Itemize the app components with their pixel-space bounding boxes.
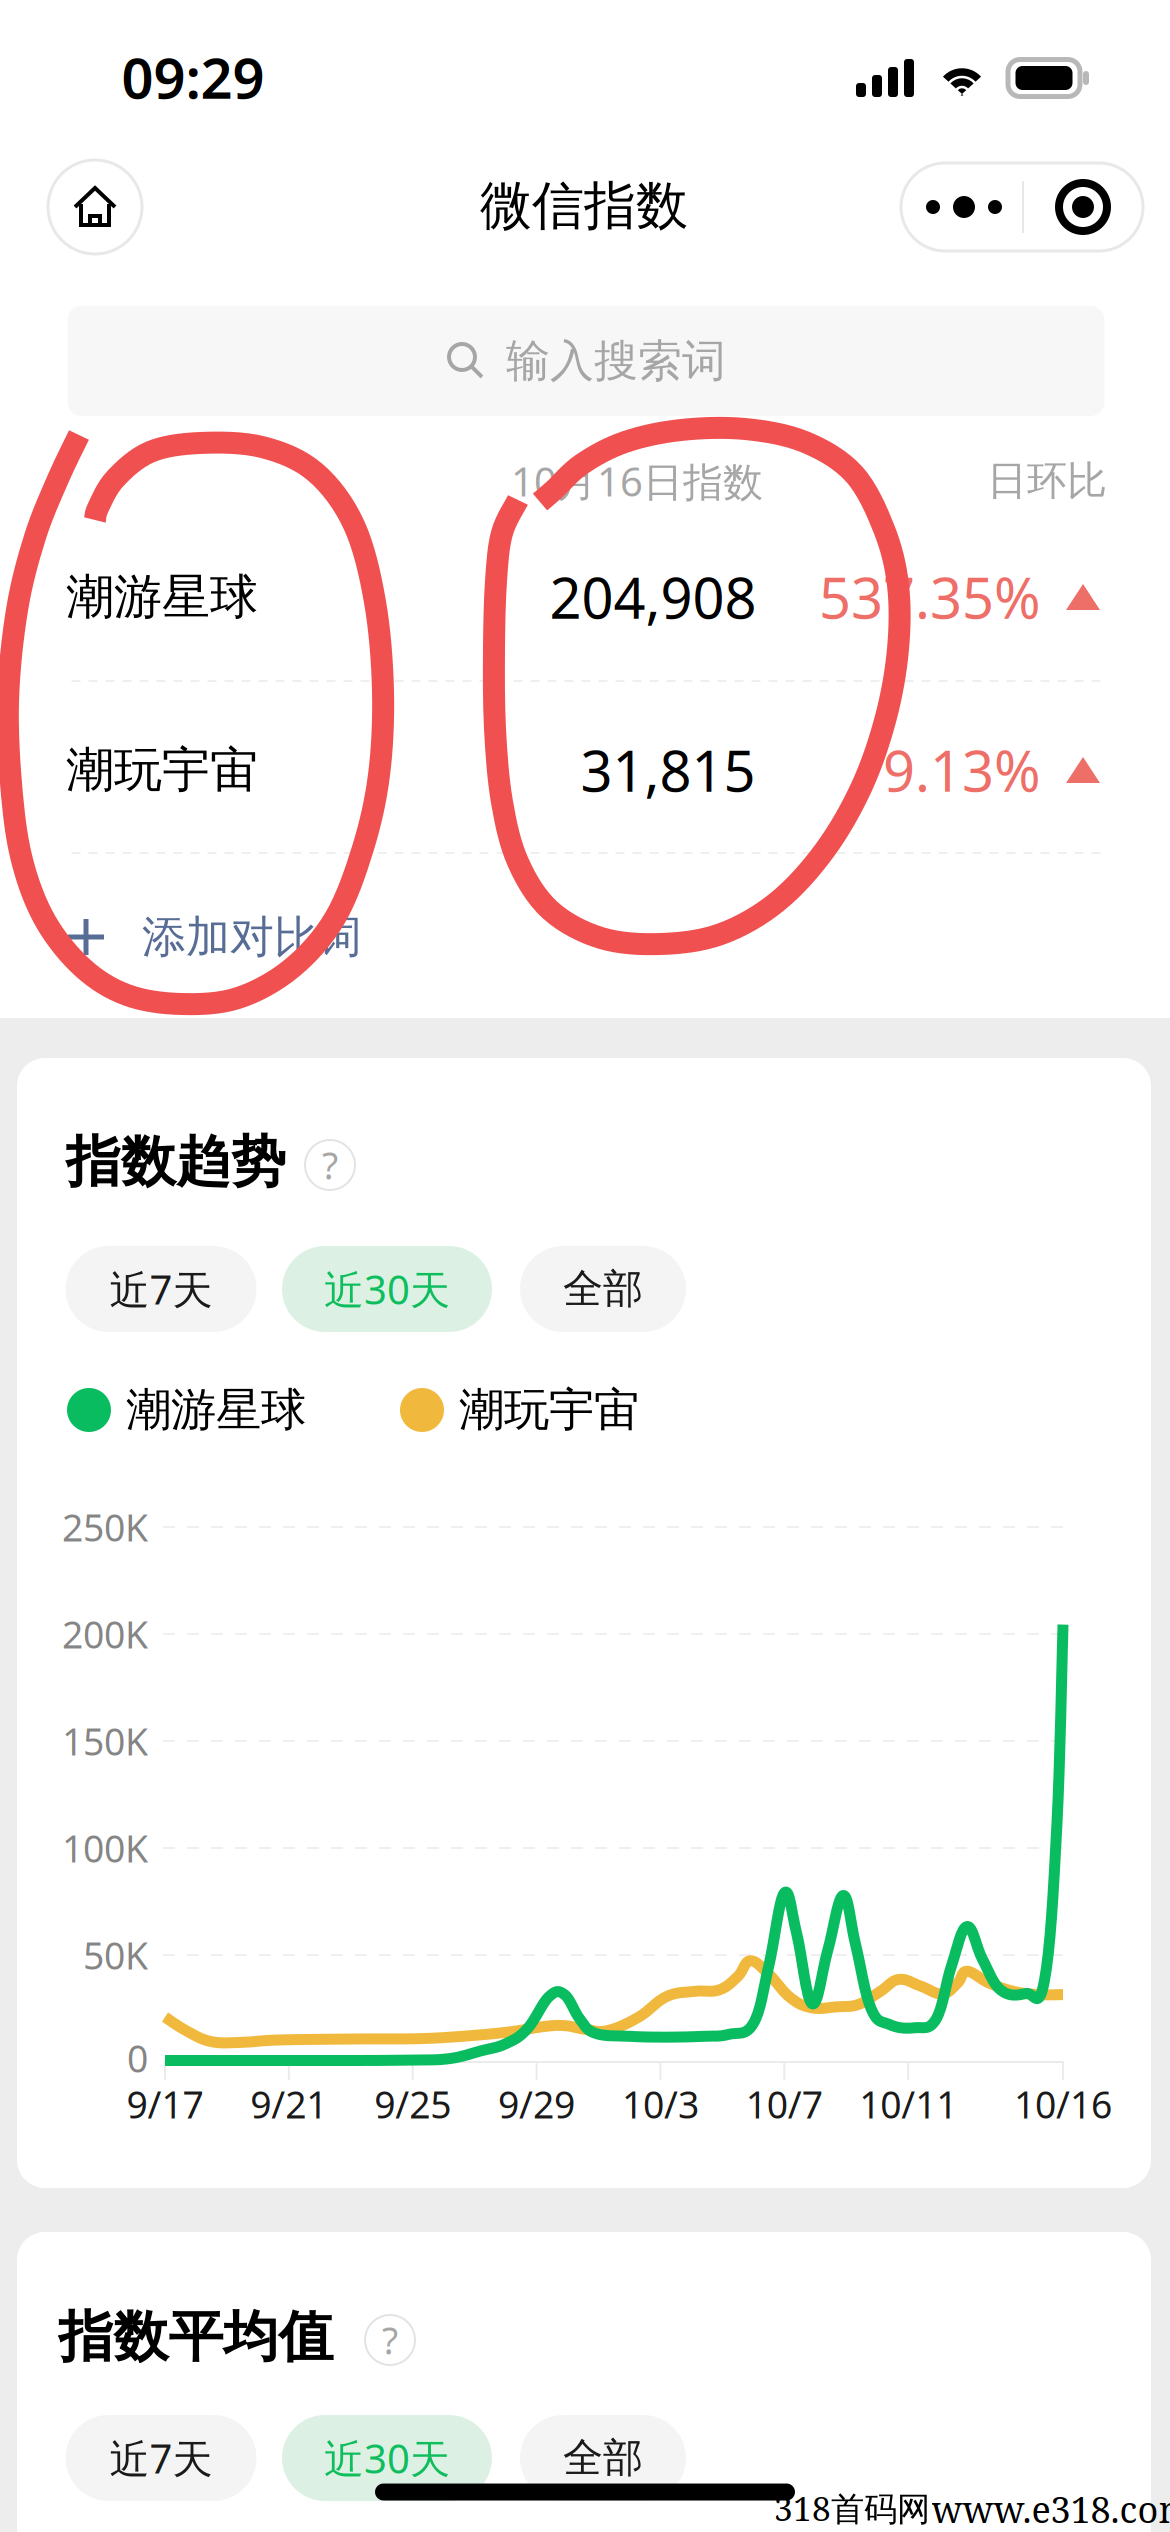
staticText: ?	[382, 2315, 398, 2365]
staticText: 指数趋势	[66, 1128, 286, 1195]
staticText: 近7天	[109, 2431, 212, 2484]
staticText: 近7天	[109, 1262, 212, 1315]
staticText: 31,815	[580, 733, 755, 807]
staticText: 200K	[62, 1609, 148, 1659]
staticText: 537.35%	[819, 560, 1041, 634]
button[interactable]: 输入搜索词	[67, 306, 1104, 416]
staticText: 10/11	[859, 2079, 957, 2129]
staticText: 潮游星球	[126, 1382, 306, 1438]
staticText: 9/21	[250, 2079, 327, 2129]
staticText: 318首码网	[774, 2485, 930, 2531]
staticText: 10月16日指数	[511, 454, 763, 507]
staticText: 09:29	[121, 40, 264, 114]
staticText: 204,908	[549, 560, 756, 634]
button[interactable]: 全部	[520, 1246, 686, 1332]
button[interactable]: 潮玩宇宙	[0, 691, 1170, 849]
staticText: 9.13%	[883, 733, 1041, 807]
staticText: 添加对比词	[142, 910, 362, 964]
button[interactable]: More options	[901, 163, 1143, 251]
staticText: 10/7	[746, 2079, 823, 2129]
staticText: 潮玩宇宙	[66, 740, 258, 799]
staticText: 日环比	[987, 456, 1107, 505]
staticText: 全部	[563, 2433, 643, 2482]
button[interactable]: 潮游星球	[0, 518, 1170, 676]
staticText: 100K	[62, 1823, 148, 1873]
staticText: 10/3	[622, 2079, 699, 2129]
button[interactable]: 添加对比词	[0, 873, 1170, 1001]
staticText: 全部	[563, 1264, 643, 1313]
button[interactable]: Help	[365, 2315, 415, 2365]
button[interactable]: 近30天	[282, 1246, 492, 1332]
staticText: 指数平均值	[58, 2303, 333, 2370]
staticText: 150K	[62, 1716, 148, 1766]
button[interactable]: 近30天	[282, 2415, 492, 2501]
staticText: 0	[127, 2033, 148, 2083]
button[interactable]: Help	[305, 1140, 355, 1190]
staticText: 9/29	[498, 2079, 575, 2129]
button[interactable]: Home	[48, 160, 142, 254]
staticText: 250K	[62, 1502, 148, 1552]
staticText: 10/16	[1014, 2079, 1112, 2129]
staticText: ?	[322, 1140, 338, 1190]
staticText: 潮玩宇宙	[459, 1382, 639, 1438]
staticText: 输入搜索词	[506, 334, 726, 388]
button[interactable]: 近7天	[65, 1246, 256, 1332]
staticText: 9/17	[126, 2079, 203, 2129]
button[interactable]: 全部	[520, 2415, 686, 2501]
staticText: 9/25	[374, 2079, 451, 2129]
staticText: 近30天	[324, 2431, 450, 2484]
button[interactable]: 近7天	[65, 2415, 256, 2501]
staticText: www.e318.com	[931, 2484, 1170, 2532]
staticText: 微信指数	[480, 174, 688, 238]
staticText: 潮游星球	[66, 567, 258, 626]
staticText: 50K	[83, 1930, 148, 1980]
staticText: 近30天	[324, 1262, 450, 1315]
